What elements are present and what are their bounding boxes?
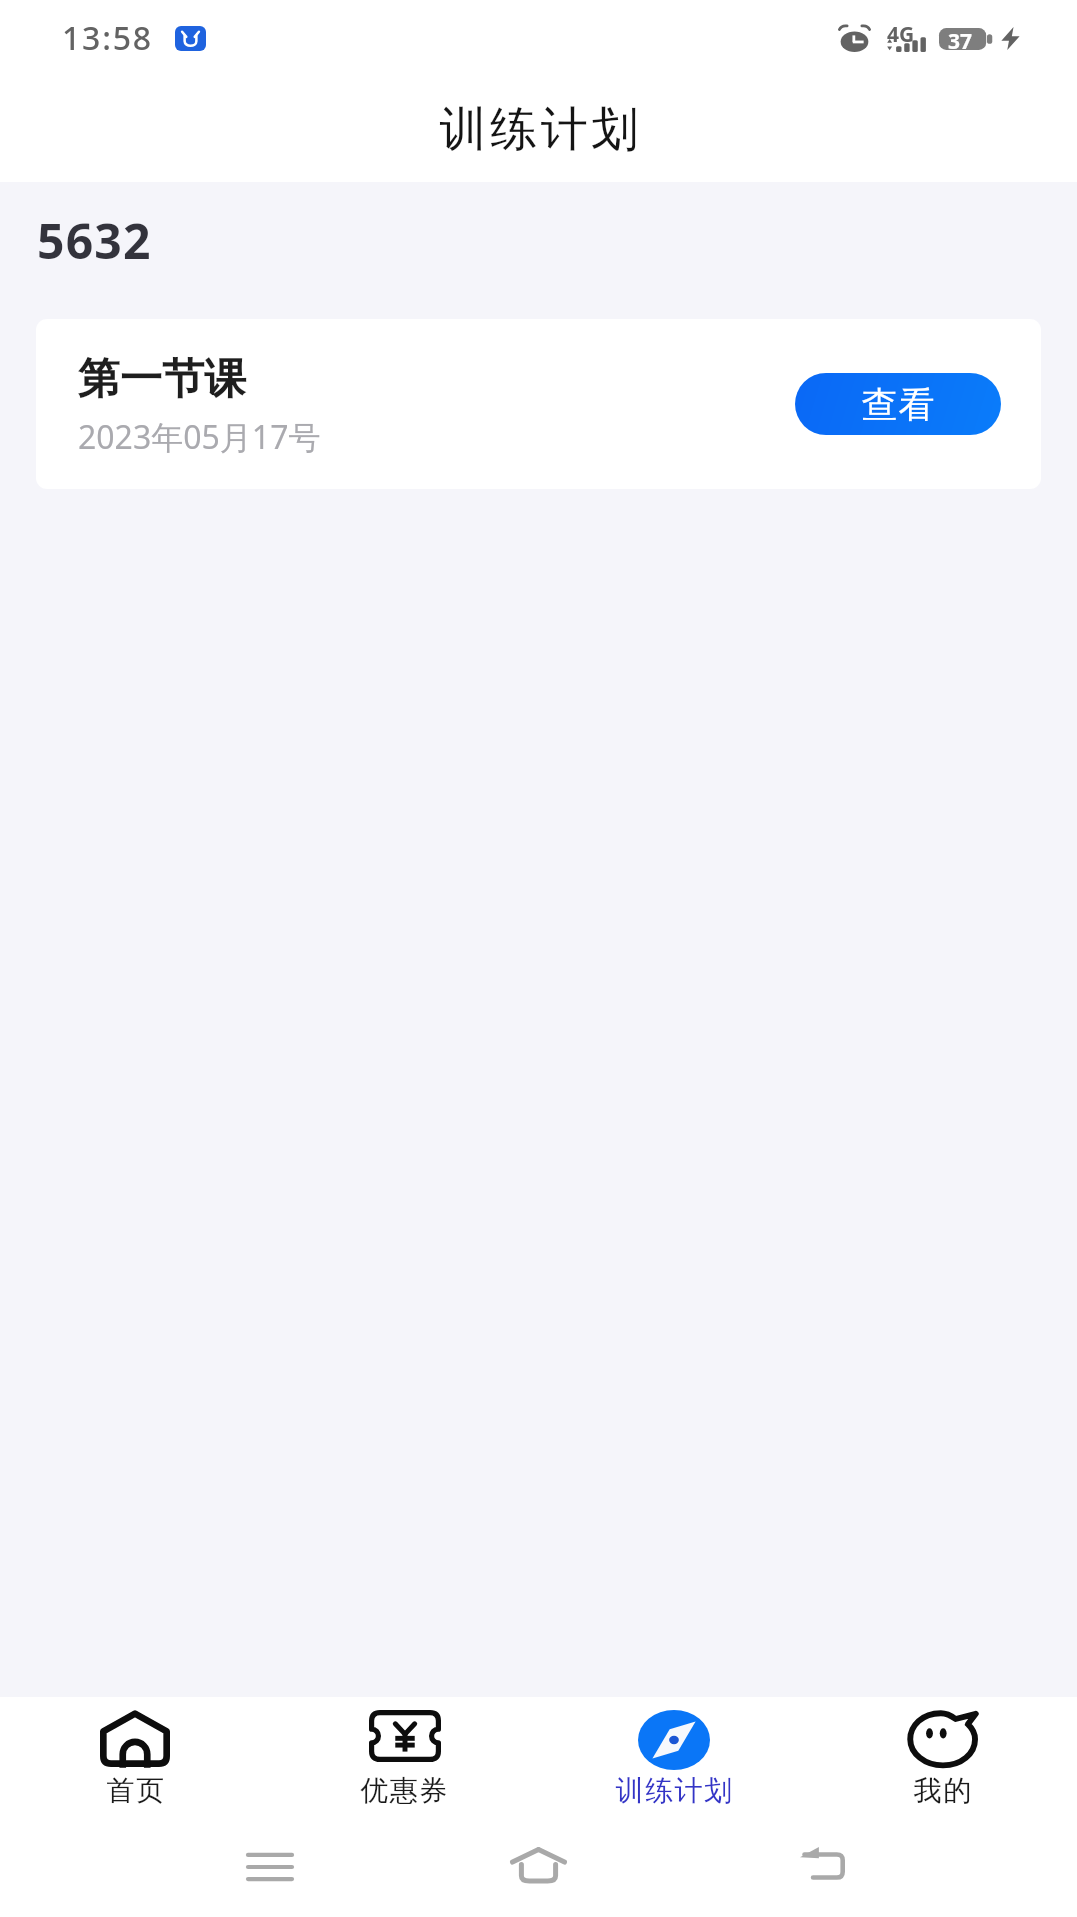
staticText: 首页 <box>106 1773 165 1808</box>
staticText: 训练计划 <box>438 100 640 159</box>
staticText: 4G <box>887 20 915 46</box>
staticText: 2023年05月17号 <box>78 415 321 459</box>
button[interactable]: 首页 <box>0 1697 270 1830</box>
button[interactable]: 我的 <box>808 1697 1077 1830</box>
staticText: 训练计划 <box>615 1773 733 1808</box>
staticText: 13:58 <box>62 16 153 60</box>
button[interactable]: Home <box>496 1821 581 1908</box>
staticText: 第一节课 <box>78 353 246 406</box>
button[interactable]: 第一节课 <box>36 319 1041 489</box>
staticText: 5632 <box>37 208 152 273</box>
button[interactable]: Recents <box>227 1823 312 1910</box>
staticText: 优惠券 <box>360 1773 449 1808</box>
button[interactable]: Back <box>780 1822 865 1909</box>
button[interactable]: 优惠券 <box>270 1697 539 1830</box>
staticText: 37 <box>948 27 973 49</box>
staticText: 查看 <box>861 382 935 427</box>
button[interactable]: 查看 <box>795 373 1001 435</box>
button[interactable]: 训练计划 <box>539 1697 808 1830</box>
staticText: 我的 <box>913 1773 972 1808</box>
